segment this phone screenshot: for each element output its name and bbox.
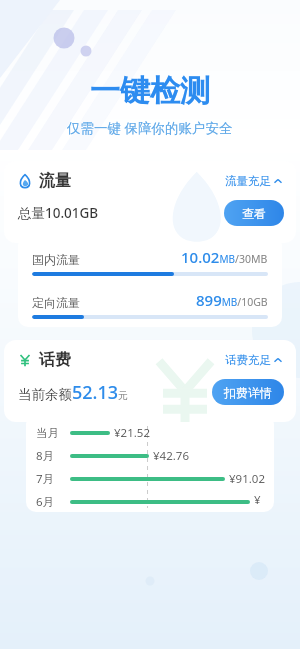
staticText: 当月 — [36, 426, 59, 440]
staticText: 一键检测 — [90, 72, 210, 110]
staticText: 当前余额52.13元 — [18, 380, 129, 405]
staticText: 仅需一键 保障你的账户安全 — [67, 119, 233, 137]
button[interactable]: 扣费详情 — [212, 379, 284, 405]
staticText: 7月 — [36, 471, 55, 487]
button[interactable]: 话费充足 — [223, 351, 284, 369]
button[interactable]: 查看 — [224, 200, 284, 226]
button[interactable]: 流量充足 — [223, 172, 284, 190]
staticText: 话费 — [39, 350, 71, 370]
staticText: ¥42.76 — [153, 448, 189, 464]
staticText: 总量10.01GB — [18, 204, 99, 222]
staticText: ¥21.52 — [114, 425, 150, 441]
staticText: 流量充足 — [225, 174, 271, 188]
staticText: 扣费详情 — [224, 385, 272, 400]
staticText: 话费充足 — [225, 353, 271, 367]
staticText: ¥108.92 — [254, 492, 266, 512]
staticText: 10.02MB/30MB — [181, 247, 268, 267]
staticText: 899MB/10GB — [196, 290, 268, 310]
staticText: 定向流量 — [32, 295, 80, 310]
staticText: 查看 — [242, 206, 266, 221]
staticText: 国内流量 — [32, 252, 80, 267]
staticText: 流量 — [39, 171, 71, 191]
staticText: 8月 — [36, 448, 55, 464]
staticText: 6月 — [36, 494, 55, 510]
staticText: ¥91.02 — [229, 471, 265, 487]
